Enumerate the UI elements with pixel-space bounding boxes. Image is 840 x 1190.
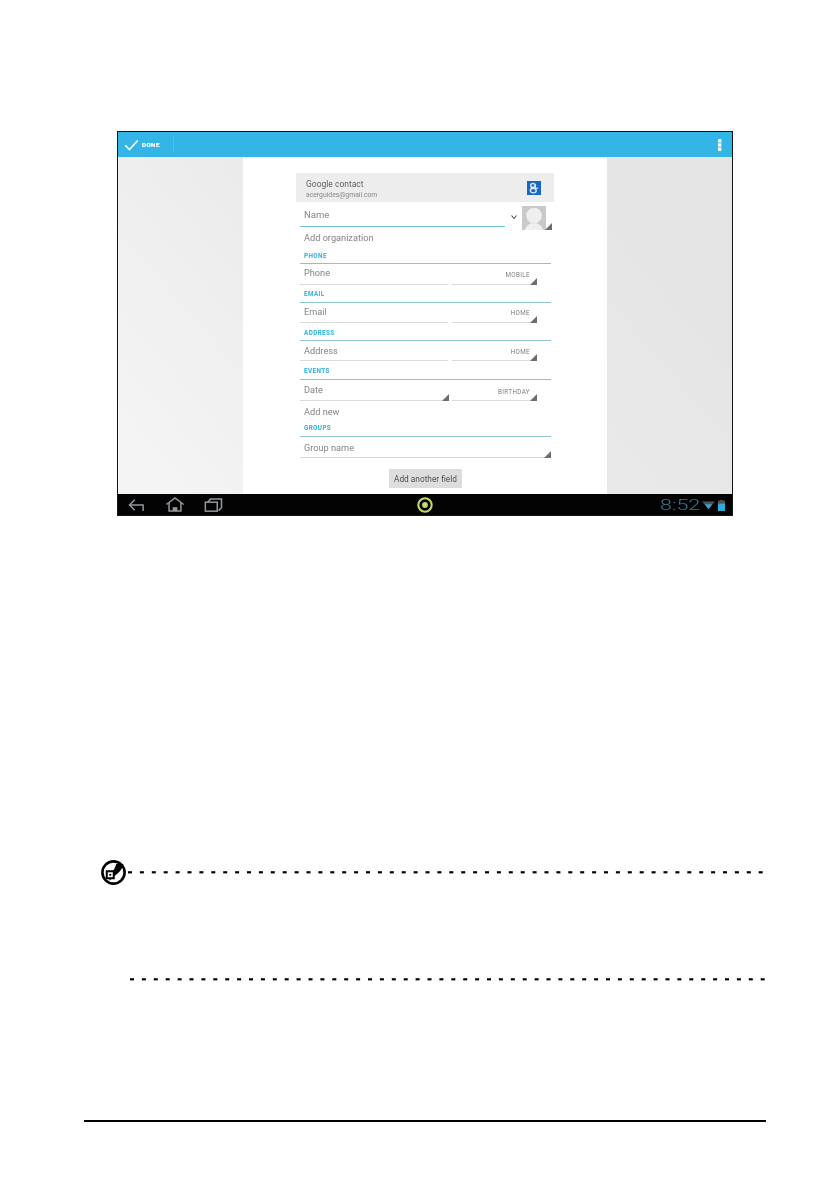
button[interactable]: Back: [122, 494, 152, 515]
staticText: Add another field: [394, 474, 457, 484]
staticText: 8:52: [660, 497, 701, 514]
staticText: PHONE: [304, 252, 327, 259]
staticText: ADDRESS: [304, 329, 335, 336]
staticText: Group name: [304, 442, 355, 453]
staticText: GROUPS: [304, 424, 332, 431]
button[interactable]: Add another field: [389, 469, 462, 488]
staticText: Google contact: [306, 179, 364, 189]
button[interactable]: DONE: [118, 132, 173, 157]
button[interactable]: Recent apps: [198, 494, 228, 515]
button[interactable]: More options: [709, 132, 732, 157]
staticText: Email: [304, 306, 327, 317]
staticText: Phone: [304, 267, 331, 278]
staticText: EMAIL: [304, 290, 325, 297]
staticText: Address: [304, 345, 338, 356]
staticText: MOBILE: [452, 271, 530, 278]
staticText: Add organization: [304, 232, 374, 243]
staticText: HOME: [452, 348, 530, 355]
staticText: HOME: [452, 309, 530, 316]
staticText: acerguides@gmail.com: [306, 191, 378, 199]
button[interactable]: Home: [160, 494, 190, 515]
button[interactable]: Notifications: [414, 494, 436, 515]
staticText: Date: [304, 384, 323, 395]
button[interactable]: Google contact: [296, 173, 554, 202]
staticText: BIRTHDAY: [452, 388, 530, 395]
staticText: EVENTS: [304, 367, 330, 374]
button[interactable]: Contact photo: [522, 206, 546, 230]
staticText: Name: [304, 209, 330, 220]
staticText: Add new: [304, 406, 340, 417]
staticText: DONE: [142, 141, 160, 148]
